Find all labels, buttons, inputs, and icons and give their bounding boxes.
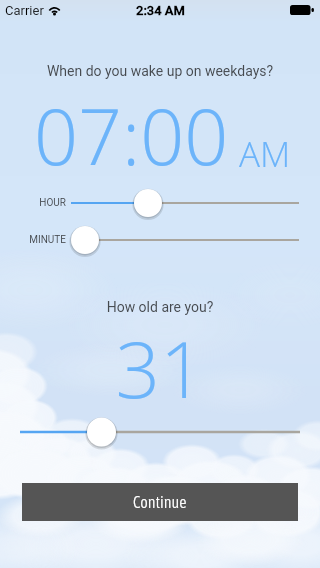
- staticText: When do you wake up on weekdays?: [0, 63, 320, 79]
- button[interactable]: MINUTE: [0, 225, 320, 255]
- staticText: 2:34 AM: [136, 3, 185, 18]
- other: Battery full: [290, 5, 315, 15]
- staticText: 07:00: [34, 83, 229, 188]
- staticText: How old are you?: [0, 299, 320, 315]
- staticText: AM: [239, 130, 291, 178]
- button[interactable]: [0, 417, 320, 447]
- button[interactable]: HOUR: [0, 188, 320, 218]
- staticText: Carrier: [5, 3, 44, 18]
- staticText: HOUR: [0, 197, 66, 209]
- staticText: MINUTE: [0, 234, 66, 246]
- button[interactable]: Continue: [22, 483, 298, 521]
- other: Wi-Fi signal: [49, 5, 60, 15]
- staticText: 31: [0, 315, 320, 421]
- staticText: Continue: [133, 493, 187, 511]
